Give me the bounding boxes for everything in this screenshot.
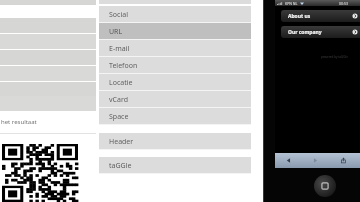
staticText: 00:53 [339, 1, 348, 6]
staticText: Telefoon [109, 61, 138, 71]
button[interactable]: vCard [99, 91, 251, 108]
staticText: Our company [288, 29, 322, 36]
button[interactable]: E-mail [99, 40, 251, 57]
button[interactable]: Forward [302, 153, 329, 168]
staticText: About us [288, 13, 311, 20]
button[interactable]: Header [99, 133, 251, 150]
staticText: taGGle [109, 161, 132, 171]
button[interactable]: QR code [2, 144, 78, 202]
button[interactable]: Share [329, 153, 357, 168]
button[interactable]: Telefoon [99, 57, 251, 74]
button[interactable]: Space [99, 108, 251, 125]
staticText: Locatie [109, 78, 133, 88]
staticText: Social [109, 10, 128, 20]
button[interactable]: URL [99, 23, 251, 40]
staticText: powered by taGGle [321, 55, 348, 59]
staticText: Header [109, 137, 134, 147]
staticText: E-mail [109, 44, 130, 54]
button[interactable]: About us [281, 10, 360, 22]
button[interactable]: Locatie [99, 74, 251, 91]
staticText: vCard [109, 95, 128, 105]
button[interactable]: Back [275, 153, 302, 168]
button[interactable]: Bookmarks [357, 153, 360, 168]
staticText: KPN NL [285, 1, 298, 6]
staticText: het resultaat [1, 118, 37, 126]
staticText: URL [109, 27, 123, 37]
button[interactable]: Home [314, 175, 336, 197]
button[interactable]: Social [99, 6, 251, 23]
button[interactable]: Our company [281, 26, 360, 38]
button[interactable]: taGGle [99, 157, 251, 174]
staticText: Space [109, 112, 129, 122]
